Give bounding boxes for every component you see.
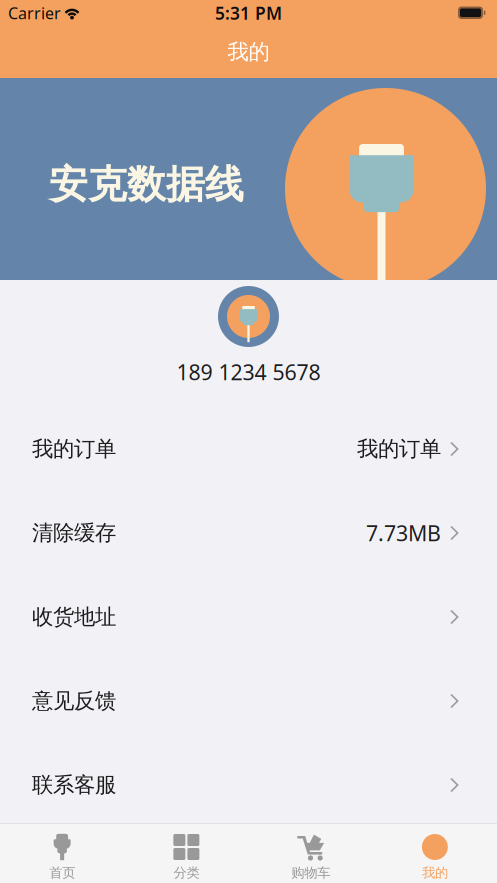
- button[interactable]: 清除缓存: [0, 491, 497, 575]
- staticText: Carrier: [8, 2, 61, 24]
- button[interactable]: 联系客服: [0, 743, 497, 827]
- staticText: 189 1234 5678: [176, 358, 320, 386]
- staticText: 我的订单: [32, 436, 116, 462]
- button[interactable]: 首页: [0, 823, 124, 883]
- button[interactable]: 购物车: [248, 823, 373, 883]
- staticText: 联系客服: [32, 772, 116, 798]
- staticText: 5:31 PM: [215, 1, 282, 24]
- staticText: 收货地址: [32, 604, 116, 630]
- button[interactable]: 分类: [124, 823, 248, 883]
- staticText: 7.73MB: [366, 519, 441, 547]
- button[interactable]: 意见反馈: [0, 659, 497, 743]
- button[interactable]: 我的: [0, 26, 497, 78]
- staticText: 首页: [49, 864, 75, 881]
- staticText: 意见反馈: [32, 688, 116, 714]
- staticText: 安克数据线: [49, 161, 244, 208]
- staticText: 清除缓存: [32, 520, 116, 546]
- staticText: 购物车: [291, 864, 330, 881]
- staticText: 分类: [173, 864, 199, 881]
- staticText: 我的: [227, 39, 269, 65]
- button[interactable]: 我的: [373, 823, 497, 883]
- staticText: 我的订单: [357, 436, 441, 462]
- button[interactable]: 我的订单: [0, 407, 497, 491]
- button[interactable]: 收货地址: [0, 575, 497, 659]
- staticText: 我的: [422, 864, 448, 881]
